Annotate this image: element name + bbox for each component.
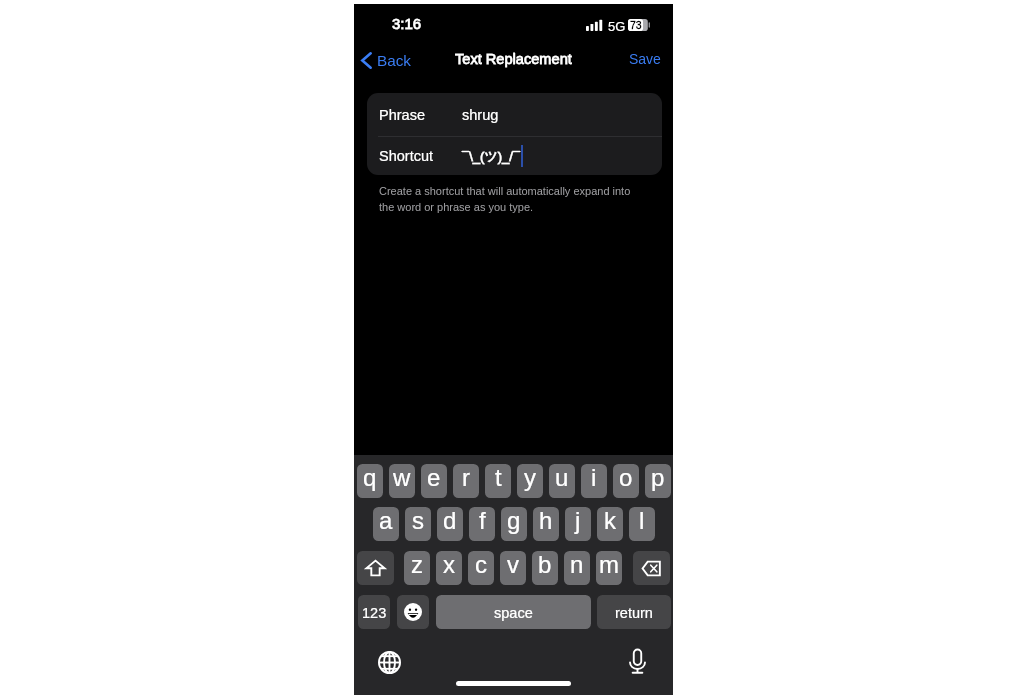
staticText: r bbox=[462, 464, 470, 491]
staticText: 73 bbox=[630, 19, 642, 31]
button[interactable]: x bbox=[436, 551, 462, 585]
staticText: b bbox=[538, 551, 552, 578]
button[interactable]: Phrase bbox=[367, 93, 662, 136]
button[interactable]: w bbox=[389, 464, 415, 498]
button[interactable]: m bbox=[596, 551, 622, 585]
staticText: 5G bbox=[608, 19, 626, 34]
button[interactable]: Emoji bbox=[397, 595, 429, 629]
staticText: ¯\_(ツ)_/¯ bbox=[462, 148, 521, 164]
staticText: g bbox=[507, 507, 521, 534]
staticText: n bbox=[570, 551, 584, 578]
button[interactable]: l bbox=[629, 507, 655, 541]
button[interactable]: c bbox=[468, 551, 494, 585]
staticText: f bbox=[479, 507, 486, 534]
button[interactable]: b bbox=[532, 551, 558, 585]
button[interactable]: return bbox=[597, 595, 671, 629]
button[interactable]: Back bbox=[361, 48, 412, 72]
button[interactable]: k bbox=[597, 507, 623, 541]
button[interactable]: Shortcut bbox=[367, 137, 662, 175]
staticText: 3:16 bbox=[392, 15, 422, 32]
button[interactable]: u bbox=[549, 464, 575, 498]
button[interactable]: g bbox=[501, 507, 527, 541]
staticText: q bbox=[363, 464, 377, 491]
staticText: a bbox=[379, 507, 393, 534]
staticText: k bbox=[604, 507, 616, 534]
button[interactable]: n bbox=[564, 551, 590, 585]
button[interactable]: Dictation bbox=[622, 646, 652, 676]
staticText: u bbox=[555, 464, 569, 491]
button[interactable]: h bbox=[533, 507, 559, 541]
staticText: t bbox=[495, 464, 502, 491]
staticText: Text Replacement bbox=[455, 51, 572, 67]
staticText: z bbox=[411, 551, 423, 578]
button[interactable]: space bbox=[436, 595, 591, 629]
staticText: j bbox=[575, 507, 581, 534]
button[interactable]: Backspace bbox=[633, 551, 670, 585]
button[interactable]: p bbox=[645, 464, 671, 498]
staticText: return bbox=[615, 605, 653, 621]
button[interactable]: j bbox=[565, 507, 591, 541]
button[interactable]: i bbox=[581, 464, 607, 498]
staticText: Shortcut bbox=[379, 148, 462, 164]
staticText: shrug bbox=[462, 107, 499, 123]
button[interactable]: o bbox=[613, 464, 639, 498]
button[interactable]: r bbox=[453, 464, 479, 498]
button[interactable]: t bbox=[485, 464, 511, 498]
staticText: s bbox=[412, 507, 424, 534]
button[interactable]: e bbox=[421, 464, 447, 498]
staticText: i bbox=[591, 464, 597, 491]
staticText: o bbox=[619, 464, 633, 491]
staticText: Back bbox=[377, 52, 412, 69]
button[interactable]: f bbox=[469, 507, 495, 541]
button[interactable]: Shift bbox=[357, 551, 394, 585]
button[interactable]: v bbox=[500, 551, 526, 585]
button[interactable]: Change keyboard bbox=[374, 647, 404, 677]
staticText: w bbox=[393, 464, 411, 491]
staticText: m bbox=[599, 551, 619, 578]
staticText: h bbox=[539, 507, 553, 534]
button[interactable]: 123 bbox=[358, 595, 390, 629]
button[interactable]: z bbox=[404, 551, 430, 585]
button[interactable]: y bbox=[517, 464, 543, 498]
staticText: l bbox=[639, 507, 645, 534]
staticText: c bbox=[475, 551, 487, 578]
button[interactable]: d bbox=[437, 507, 463, 541]
staticText: p bbox=[651, 464, 665, 491]
staticText: Create a shortcut that will automaticall… bbox=[379, 185, 638, 214]
staticText: e bbox=[427, 464, 441, 491]
staticText: d bbox=[443, 507, 457, 534]
staticText: space bbox=[494, 605, 533, 621]
staticText: 123 bbox=[362, 605, 387, 621]
staticText: Phrase bbox=[379, 107, 462, 123]
staticText: v bbox=[507, 551, 519, 578]
button[interactable]: q bbox=[357, 464, 383, 498]
button[interactable]: a bbox=[373, 507, 399, 541]
button[interactable]: s bbox=[405, 507, 431, 541]
staticText: x bbox=[443, 551, 455, 578]
button[interactable]: Save bbox=[629, 51, 661, 67]
staticText: y bbox=[524, 464, 536, 491]
